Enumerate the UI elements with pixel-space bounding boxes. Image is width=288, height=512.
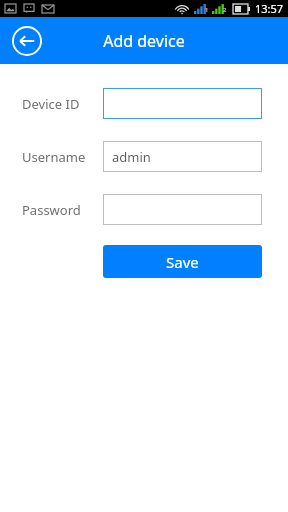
button[interactable]: admin (103, 141, 262, 172)
staticText: Save (166, 252, 199, 272)
staticText: Username (22, 148, 86, 166)
button[interactable]: Back (11, 25, 43, 57)
button[interactable]: Save (103, 245, 262, 278)
staticText: 1 (205, 6, 209, 14)
button[interactable] (103, 194, 262, 225)
button[interactable] (103, 88, 262, 119)
staticText: admin (112, 148, 151, 166)
staticText: Device ID (22, 95, 80, 113)
staticText: Password (22, 201, 81, 219)
staticText: 13:57 (255, 1, 284, 16)
staticText: 2 (223, 6, 227, 14)
staticText: Add device (103, 30, 185, 52)
